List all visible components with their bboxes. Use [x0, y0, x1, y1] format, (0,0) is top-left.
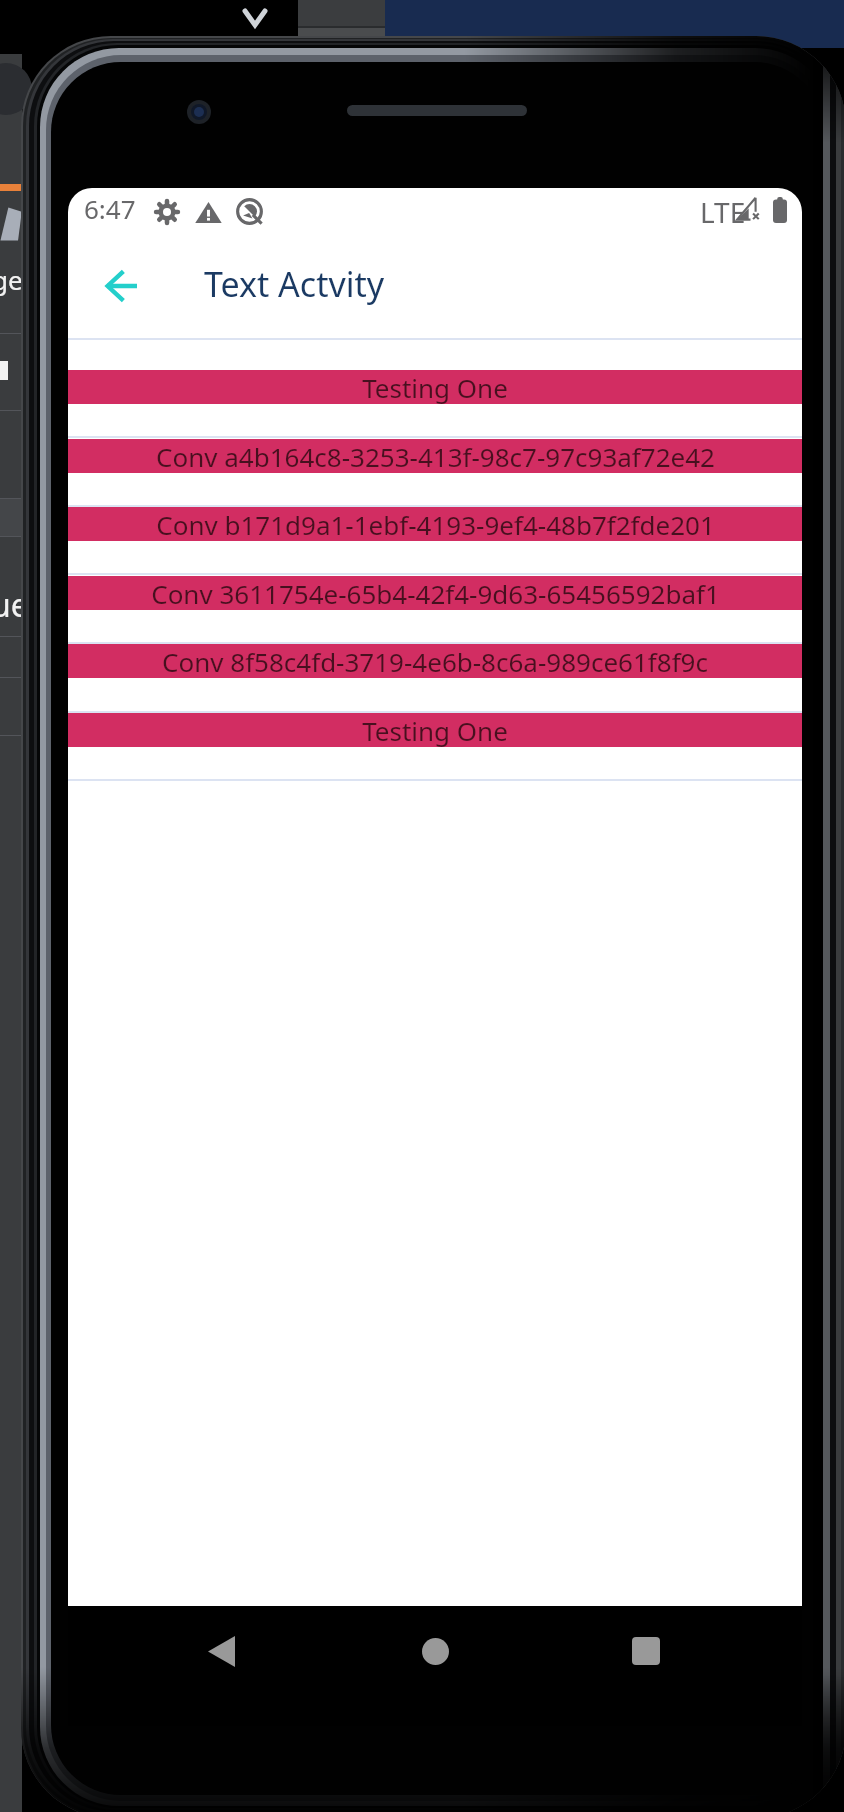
button[interactable]: Back [191, 1621, 251, 1681]
staticText: ge [0, 262, 23, 297]
staticText: Conv b171d9a1-1ebf-4193-9ef4-48b7f2fde20… [156, 507, 715, 541]
staticText: Conv 3611754e-65b4-42f4-9d63-65456592baf… [151, 576, 720, 610]
staticText: LTE [700, 193, 746, 231]
staticText: Testing One [362, 713, 508, 747]
button[interactable]: Testing One [68, 370, 802, 404]
button[interactable]: Testing One [68, 713, 802, 747]
button[interactable]: Conv b171d9a1-1ebf-4193-9ef4-48b7f2fde20… [68, 507, 802, 541]
staticText: ue [0, 583, 29, 627]
button[interactable]: Navigate up [89, 254, 153, 318]
button[interactable]: Conv a4b164c8-3253-413f-98c7-97c93af72e4… [68, 439, 802, 473]
staticText: 6:47 [84, 191, 136, 226]
staticText: Conv 8f58c4fd-3719-4e6b-8c6a-989ce61f8f9… [162, 644, 708, 678]
button[interactable]: Recent apps [616, 1621, 676, 1681]
button[interactable]: Conv 8f58c4fd-3719-4e6b-8c6a-989ce61f8f9… [68, 644, 802, 678]
button[interactable]: Home [405, 1621, 465, 1681]
button[interactable]: Conv 3611754e-65b4-42f4-9d63-65456592baf… [68, 576, 802, 610]
staticText: Testing One [362, 370, 508, 404]
staticText: Text Actvity [204, 261, 385, 307]
staticText: Conv a4b164c8-3253-413f-98c7-97c93af72e4… [156, 439, 715, 473]
